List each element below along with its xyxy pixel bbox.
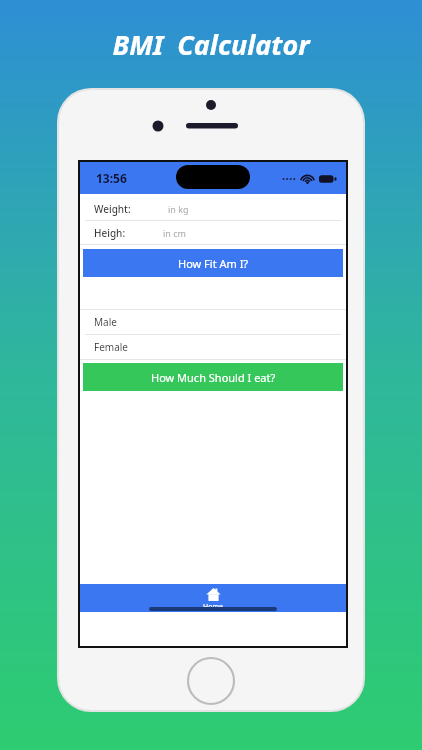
staticText: How Fit Am I?	[178, 256, 249, 271]
staticText: Heigh:	[94, 226, 126, 240]
button[interactable]: Male	[80, 310, 346, 334]
button[interactable]: How Much Should I eat?	[83, 363, 343, 391]
staticText: Weight:	[94, 202, 131, 216]
staticText: in kg	[168, 203, 189, 215]
staticText: BMI Calculator	[112, 26, 310, 63]
button[interactable]: Heigh:	[80, 221, 346, 244]
button[interactable]: Female	[80, 335, 346, 359]
button[interactable]: Home	[80, 584, 346, 612]
staticText: Male	[94, 315, 117, 329]
button[interactable]: How Fit Am I?	[83, 249, 343, 277]
button[interactable]: Weight:	[80, 197, 346, 220]
staticText: Female	[94, 340, 129, 354]
staticText: in cm	[163, 227, 186, 239]
staticText: How Much Should I eat?	[151, 370, 276, 385]
staticText: 13:56	[96, 170, 127, 186]
staticText: Home	[203, 602, 223, 612]
